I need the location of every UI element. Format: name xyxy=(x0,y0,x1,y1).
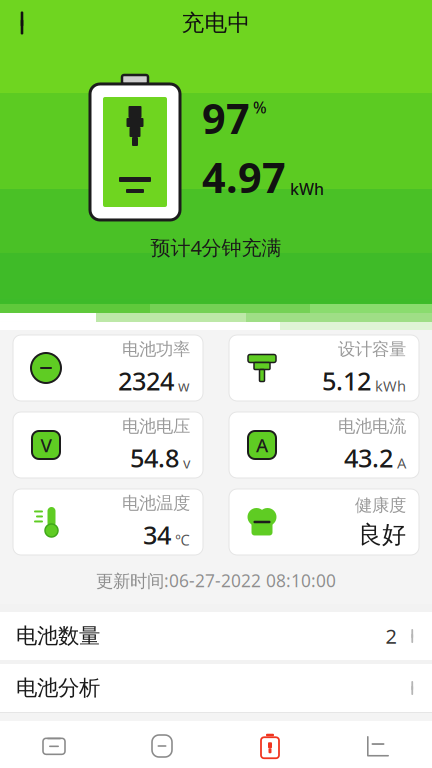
staticText: 电池分析 xyxy=(16,675,100,701)
staticText: 良好 xyxy=(358,520,406,549)
button[interactable]: Back xyxy=(0,3,44,43)
button[interactable]: Charging xyxy=(216,721,324,768)
button[interactable]: V xyxy=(13,412,203,478)
staticText: kWh xyxy=(375,376,406,395)
staticText: 电池温度 xyxy=(122,492,190,514)
staticText: kWh xyxy=(290,178,324,199)
button[interactable]: 电池数量 xyxy=(0,612,432,660)
staticText: % xyxy=(253,97,267,118)
staticText: 电池电流 xyxy=(338,415,406,437)
staticText: 34 xyxy=(143,518,171,551)
staticText: 设计容量 xyxy=(338,338,406,360)
staticText: 电池电压 xyxy=(122,415,190,437)
button[interactable]: Home xyxy=(0,721,108,768)
staticText: 2 xyxy=(385,623,396,649)
staticText: 4.97 xyxy=(202,149,286,204)
staticText: 43.2 xyxy=(344,441,393,474)
staticText: V xyxy=(40,433,51,457)
button[interactable]: 电池分析 xyxy=(0,664,432,712)
button[interactable]: Statistics xyxy=(324,721,432,768)
button[interactable]: A xyxy=(229,412,419,478)
staticText: 电池数量 xyxy=(16,623,100,649)
staticText: 健康度 xyxy=(355,495,406,516)
staticText: 电池功率 xyxy=(122,338,190,360)
staticText: 5.12 xyxy=(322,364,371,397)
staticText: 预计4分钟充满 xyxy=(150,234,281,261)
staticText: 2324 xyxy=(118,364,174,397)
staticText: 充电中 xyxy=(181,9,250,37)
staticText: 更新时间:06-27-2022 08:10:00 xyxy=(96,569,336,592)
staticText: v xyxy=(183,453,190,472)
button[interactable]: 设计容量 xyxy=(229,335,419,401)
button[interactable]: 健康度 xyxy=(229,489,419,555)
button[interactable]: Battery pack xyxy=(108,721,216,768)
staticText: 54.8 xyxy=(130,441,179,474)
staticText: 97 xyxy=(202,91,250,145)
staticText: w xyxy=(178,376,190,395)
staticText: ℃ xyxy=(175,530,190,549)
button[interactable]: 电池功率 xyxy=(13,335,203,401)
staticText: A xyxy=(256,433,268,457)
button[interactable]: 电池温度 xyxy=(13,489,203,555)
staticText: A xyxy=(397,453,406,472)
